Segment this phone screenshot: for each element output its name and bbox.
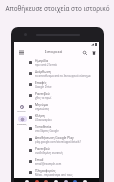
button[interactable]: Delete xyxy=(89,48,98,57)
staticText: Τοποθεσία xyxy=(35,124,52,128)
staticText: Αποθήκευση Google Play xyxy=(35,135,74,139)
staticText: Κλήση xyxy=(35,113,45,117)
button[interactable]: Email xyxy=(29,156,99,167)
button[interactable]: Αποθήκευση Google Play xyxy=(29,134,99,145)
staticText: Email xyxy=(35,157,44,161)
staticText: email@example.com xyxy=(35,162,62,166)
staticText: Ημερίδα xyxy=(35,58,48,62)
button[interactable]: Πληροφορίες xyxy=(29,167,99,178)
staticText: Επαφές xyxy=(35,80,47,84)
staticText: Ραντεβού xyxy=(35,91,50,95)
button[interactable]: Ημερίδα xyxy=(29,57,99,68)
staticText: Ιστορικό xyxy=(17,110,26,113)
button[interactable]: Μηνύμα xyxy=(29,101,99,112)
button[interactable]: Search xyxy=(80,48,89,57)
button[interactable]: Ραντεβού xyxy=(29,145,99,156)
button[interactable]: Τοποθεσία xyxy=(29,123,99,134)
button[interactable]: Menu xyxy=(14,47,28,57)
staticText: Μέσο - περισσότερα από τους xyxy=(35,173,73,177)
staticText: Google Drive xyxy=(35,85,52,89)
staticText: Αποθήκευσε στοιχεία στο ιστορικό xyxy=(5,4,110,13)
button[interactable]: Επαφές xyxy=(29,79,99,90)
button[interactable]: Ρυθμίσεις xyxy=(17,116,27,126)
staticText: 4 Ιανουαρίου xyxy=(35,118,52,122)
staticText: το αποτέλεσμα από το λειτουργικό σύστημα xyxy=(35,74,91,78)
staticText: σημειώσεις xyxy=(35,107,50,111)
staticText: στο Χάρτες Google xyxy=(35,129,59,133)
staticText: Πληροφορίες xyxy=(35,168,56,172)
staticText: Μηνύμα xyxy=(35,102,48,106)
button[interactable]: Διόρθωση xyxy=(29,68,99,79)
staticText: Ιστορικό xyxy=(45,49,63,55)
staticText: play.google.com/store/apps/details?id=co… xyxy=(35,140,96,144)
button[interactable]: Κλήση xyxy=(29,112,99,123)
staticText: Διόρθωση xyxy=(35,69,51,73)
staticText: χθες το πρωί xyxy=(35,96,52,100)
staticText: Ρυθμίσεις xyxy=(17,123,27,126)
staticText: συνδεδεμένη συσκευή xyxy=(35,151,63,155)
button[interactable]: Ιστορικό xyxy=(17,105,26,113)
staticText: Ραντεβού xyxy=(35,146,50,150)
button[interactable]: Ραντεβού xyxy=(29,90,99,101)
staticText: πριν από 2 λεπτά xyxy=(35,63,57,67)
